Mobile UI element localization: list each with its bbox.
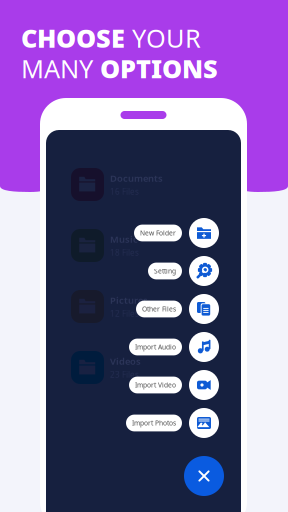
button[interactable]: Close xyxy=(184,456,224,496)
staticText: Import Video xyxy=(135,381,176,389)
staticText: 23 Files xyxy=(110,369,139,380)
button[interactable]: Music xyxy=(71,229,191,262)
button[interactable]: Import Photos xyxy=(126,415,182,431)
button[interactable]: Import Photos xyxy=(189,408,219,438)
staticText: 16 Files xyxy=(110,186,139,197)
button[interactable]: Import Audio xyxy=(129,339,182,355)
staticText: Music xyxy=(110,233,138,245)
staticText: 18 Files xyxy=(110,247,139,258)
button[interactable]: Setting xyxy=(148,263,182,279)
button[interactable]: Videos xyxy=(71,351,191,384)
staticText: Documents xyxy=(110,172,163,184)
button[interactable]: Setting xyxy=(189,256,219,286)
button[interactable]: Other Files xyxy=(189,294,219,324)
button[interactable]: Import Audio xyxy=(189,332,219,362)
staticText: New Folder xyxy=(140,229,176,237)
staticText: Pictures xyxy=(110,294,148,306)
button[interactable]: Other Files xyxy=(136,301,182,317)
staticText: 12 Files xyxy=(110,308,139,319)
button[interactable]: Pictures xyxy=(71,290,191,323)
button[interactable]: New Folder xyxy=(189,218,219,248)
staticText: CHOOSE YOUR xyxy=(21,21,201,55)
button[interactable]: Import Video xyxy=(189,370,219,400)
staticText: MANY OPTIONS xyxy=(21,52,218,85)
button[interactable]: Import Video xyxy=(129,377,182,393)
staticText: Other Files xyxy=(142,305,176,313)
staticText: Import Photos xyxy=(132,419,176,427)
button[interactable]: New Folder xyxy=(134,225,182,241)
staticText: Import Audio xyxy=(135,343,176,351)
staticText: Setting xyxy=(154,267,176,275)
staticText: Videos xyxy=(110,355,141,367)
button[interactable]: Documents xyxy=(71,168,191,201)
